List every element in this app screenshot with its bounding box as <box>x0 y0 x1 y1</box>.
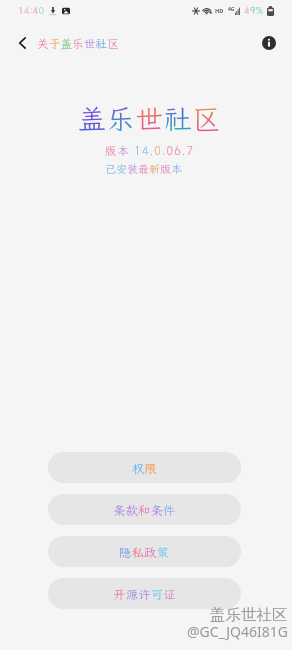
staticText: 版本 14.0.06.7 <box>105 143 194 158</box>
staticText: @GC_JQ46I81G <box>187 622 288 641</box>
staticText: 49% <box>244 4 264 17</box>
staticText: 权限 <box>132 460 158 476</box>
staticText: 14:40 <box>18 4 45 17</box>
staticText: 已安装最新版本 <box>105 162 182 176</box>
staticText: 4G <box>228 6 235 13</box>
staticText: HD <box>215 7 224 14</box>
button[interactable]: 开源许可证 <box>48 578 241 609</box>
button[interactable]: Info <box>256 30 282 56</box>
button[interactable]: 权限 <box>48 452 241 483</box>
button[interactable]: Back <box>0 23 44 63</box>
staticText: 条款和条件 <box>113 502 176 518</box>
button[interactable]: 隐私政策 <box>48 536 241 567</box>
staticText: 关于盖乐世社区 <box>37 36 119 51</box>
staticText: 盖乐世社区 <box>78 100 222 137</box>
staticText: 隐私政策 <box>119 544 170 560</box>
button[interactable]: 条款和条件 <box>48 494 241 525</box>
staticText: 开源许可证 <box>113 586 176 602</box>
staticText: 盖乐世社区 <box>210 605 288 625</box>
